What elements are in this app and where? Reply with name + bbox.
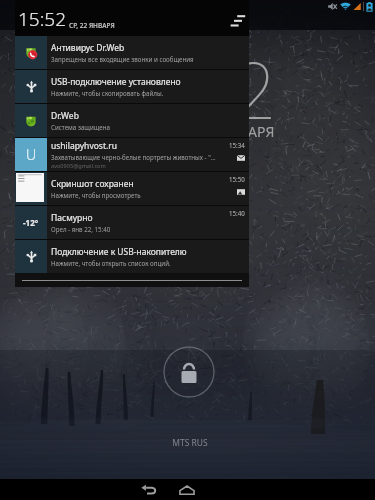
staticText: СР, 22 ЯНВАРЯ: [177, 122, 275, 141]
staticText: Захватывающие черно-белые портреты живот…: [51, 153, 216, 161]
button[interactable]: Home: [172, 479, 202, 500]
staticText: Dr.Web: [51, 110, 79, 122]
staticText: Система защищена: [51, 123, 110, 131]
staticText: -12°: [23, 217, 39, 228]
staticText: 15:52: [18, 6, 67, 32]
button[interactable]: Back: [133, 479, 163, 500]
staticText: ushilapyhvost.ru: [51, 140, 118, 152]
staticText: Запрещены все входящие звонки и сообщени…: [51, 55, 194, 63]
staticText: avo0905@gmail.com: [51, 162, 106, 170]
button[interactable]: USB-подключение установлено: [15, 70, 249, 103]
button[interactable]: Антивирус Dr.Web: [15, 36, 249, 69]
button[interactable]: Quick settings: [227, 8, 249, 30]
button[interactable]: Dr.Web: [15, 104, 249, 137]
staticText: Подключение к USB-накопителю: [51, 246, 187, 258]
button[interactable]: Скриншот сохранен: [15, 172, 249, 205]
staticText: СР, 22 ЯНВАРЯ: [69, 21, 115, 30]
staticText: 15:34: [229, 141, 245, 149]
staticText: Нажмите, чтобы открыть список опций.: [51, 259, 171, 267]
staticText: 15:52: [82, 36, 278, 142]
staticText: Нажмите, чтобы скопировать файлы.: [51, 89, 164, 97]
button[interactable]: -12°: [15, 206, 249, 239]
staticText: Пасмурно: [51, 212, 93, 224]
staticText: U: [26, 145, 37, 164]
staticText: Антивирус Dr.Web: [51, 42, 125, 54]
staticText: Скриншот сохранен: [51, 178, 134, 190]
staticText: 15:40: [229, 209, 245, 217]
staticText: USB-подключение установлено: [51, 76, 181, 88]
staticText: Орел - янв 22, 15:40: [51, 225, 111, 233]
button[interactable]: U: [15, 138, 249, 171]
button[interactable]: Подключение к USB-накопителю: [15, 240, 249, 273]
staticText: 15:50: [229, 175, 245, 183]
button[interactable]: Unlock: [163, 346, 215, 398]
staticText: MTS RUS: [164, 437, 216, 449]
staticText: Нажмите, чтобы просмотреть: [51, 191, 141, 199]
